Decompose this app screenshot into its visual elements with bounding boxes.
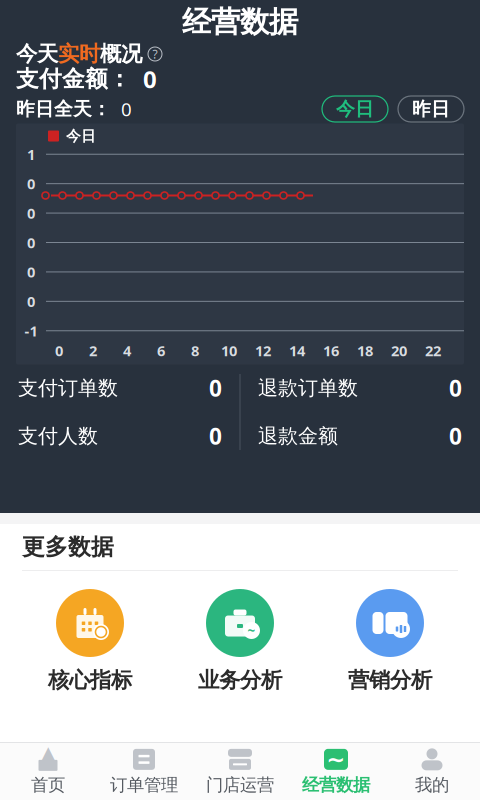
staticText: 支付人数 (18, 424, 98, 448)
staticText: 实时 (58, 41, 100, 67)
staticText: 1 (27, 144, 35, 164)
staticText: 0 (449, 421, 462, 451)
button[interactable]: 我的 (384, 743, 480, 799)
button[interactable]: ∼ (288, 743, 384, 799)
staticText: 0 (27, 233, 35, 252)
staticText: ? (152, 46, 157, 62)
staticText: 门店运营 (206, 774, 274, 796)
staticText: 10 (221, 341, 237, 360)
staticText: ∼ (326, 746, 345, 772)
staticText: -1 (24, 321, 37, 340)
staticText: 22 (425, 341, 441, 360)
staticText: 0 (111, 97, 132, 121)
staticText: 8 (191, 341, 199, 360)
staticText: 0 (27, 292, 35, 311)
staticText: 更多数据 (22, 533, 114, 561)
button[interactable]: 核心指标 (15, 589, 165, 693)
staticText: 支付订单数 (18, 376, 118, 400)
button[interactable]: ▲ (0, 743, 96, 799)
staticText: 我的 (415, 774, 449, 796)
staticText: 退款金额 (258, 424, 338, 448)
staticText: 0 (27, 262, 35, 282)
staticText: 今日 (66, 127, 96, 145)
staticText: 昨日全天： (16, 97, 111, 120)
staticText: 18 (357, 341, 373, 360)
button[interactable]: ~ (165, 589, 315, 693)
button[interactable]: 昨日 (398, 96, 464, 122)
staticText: 今日 (336, 97, 374, 120)
staticText: ▲ (39, 741, 56, 767)
staticText: 订单管理 (110, 774, 178, 796)
staticText: 0 (55, 341, 63, 360)
staticText: 核心指标 (48, 667, 132, 693)
staticText (142, 39, 148, 69)
staticText: 营销分析 (348, 667, 432, 693)
staticText: 经营数据 (302, 774, 370, 796)
button[interactable]: 订单管理 (96, 743, 192, 799)
button[interactable]: 今日 (322, 96, 388, 122)
staticText: 4 (123, 341, 131, 360)
staticText: 概况 (100, 41, 142, 67)
staticText: 16 (323, 341, 339, 360)
staticText: 业务分析 (198, 667, 282, 693)
button[interactable]: 说明 (148, 47, 162, 61)
staticText: 0 (131, 63, 157, 95)
button[interactable]: 营销分析 (315, 589, 465, 693)
staticText: 支付金额： (16, 65, 131, 93)
staticText: 0 (209, 373, 222, 403)
staticText: 首页 (31, 774, 65, 796)
staticText: 14 (289, 341, 305, 360)
staticText: 20 (391, 341, 407, 360)
staticText: 12 (255, 341, 271, 360)
staticText: 0 (27, 174, 35, 193)
button[interactable]: 门店运营 (192, 743, 288, 799)
staticText: 经营数据 (182, 4, 298, 40)
staticText: 昨日 (412, 97, 450, 120)
staticText: 退款订单数 (258, 376, 358, 400)
staticText: 0 (209, 421, 222, 451)
staticText: 2 (89, 341, 97, 360)
staticText: 6 (157, 341, 165, 360)
staticText: 今天 (16, 41, 58, 67)
staticText: 0 (449, 373, 462, 403)
staticText: ~ (247, 622, 255, 639)
staticText: 0 (27, 203, 35, 223)
